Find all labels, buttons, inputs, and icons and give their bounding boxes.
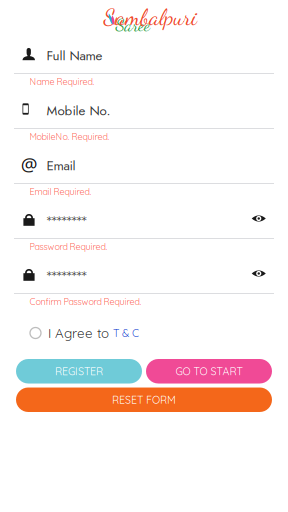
- staticText: Email: [46, 156, 75, 175]
- staticText: REGISTER: [55, 365, 103, 378]
- staticText: Confirm Password Required.: [29, 296, 141, 307]
- staticText: Full Name: [46, 46, 102, 65]
- staticText: MobileNo. Required.: [29, 131, 109, 142]
- button[interactable]: RESET FORM: [16, 387, 272, 412]
- button[interactable]: I agree to terms and conditions: [30, 327, 41, 338]
- staticText: ********: [46, 214, 86, 227]
- button[interactable]: Show password: [251, 215, 274, 226]
- button[interactable]: REGISTER: [16, 359, 142, 383]
- staticText: T & C: [113, 326, 139, 340]
- staticText: RESET FORM: [112, 393, 176, 406]
- staticText: Name Required.: [29, 76, 94, 87]
- button[interactable]: GO TO START: [146, 359, 272, 383]
- button[interactable]: Show password: [251, 270, 274, 281]
- staticText: Password Required.: [29, 241, 107, 252]
- staticText: Saree: [115, 15, 150, 35]
- staticText: Mobile No.: [46, 101, 110, 120]
- staticText: @: [21, 151, 38, 177]
- button[interactable]: T & C: [113, 326, 139, 340]
- staticText: I Agree to: [48, 325, 113, 341]
- staticText: Email Required.: [29, 186, 91, 197]
- staticText: ********: [46, 269, 86, 282]
- staticText: GO TO START: [175, 365, 242, 378]
- staticText: Sambalpuri: [103, 3, 196, 31]
